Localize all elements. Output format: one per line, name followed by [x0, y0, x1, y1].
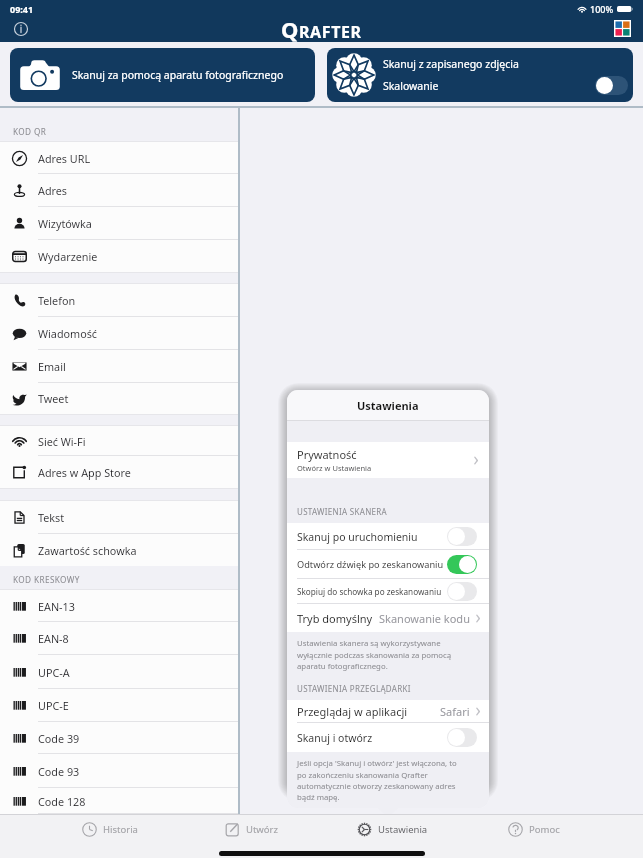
button[interactable]: Wydarzenie [0, 240, 238, 272]
staticText: EAN-13 [38, 599, 75, 614]
staticText: Ustawienia [357, 398, 419, 413]
staticText: Prywatność [297, 447, 357, 462]
button[interactable]: Skalowanie toggle [595, 76, 628, 95]
button[interactable]: Sieć Wi-Fi [0, 426, 238, 456]
button[interactable]: UPC-A [0, 655, 238, 689]
staticText: Code 128 [38, 794, 86, 809]
button[interactable]: EAN-13 [0, 590, 238, 622]
staticText: Tweet [38, 391, 69, 406]
staticText: RAFTER [299, 21, 362, 43]
staticText: USTAWIENIA PRZEGLĄDARKI [297, 683, 411, 694]
staticText: KOD QR [13, 126, 47, 137]
button[interactable]: Adres w App Store [0, 456, 238, 488]
button[interactable]: Skanuj i otwórz [287, 723, 489, 752]
button[interactable]: Code 128 [0, 788, 238, 814]
button[interactable]: Ustawienia [322, 815, 463, 844]
staticText: Tekst [38, 510, 65, 525]
staticText: Skanuj za pomocą aparatu fotograficznego [72, 68, 284, 82]
button[interactable]: Odtwórz dźwięk po zeskanowaniu [447, 555, 477, 574]
button[interactable]: Pomoc [463, 815, 604, 844]
button[interactable]: Telefon [0, 284, 238, 317]
staticText: Wydarzenie [38, 249, 98, 264]
staticText: Jeśli opcja 'Skanuj i otwórz' jest włącz… [297, 758, 457, 802]
staticText: Odtwórz dźwięk po zeskanowaniu [297, 558, 444, 571]
staticText: Code 93 [38, 764, 80, 779]
staticText: Adres [38, 183, 68, 198]
button[interactable]: Historia [39, 815, 181, 844]
staticText: Pomoc [529, 823, 560, 836]
button[interactable]: Skanuj i otwórz [447, 728, 477, 747]
staticText: Telefon [38, 293, 76, 308]
staticText: Ustawienia skanera są wykorzystywane wył… [297, 638, 452, 671]
staticText: Code 39 [38, 731, 80, 746]
button[interactable]: Skanuj z zapisanego zdjęcia [327, 48, 633, 102]
button[interactable]: Color palette [614, 20, 631, 37]
button[interactable]: Email [0, 350, 238, 383]
staticText: Skanuj i otwórz [297, 731, 373, 745]
button[interactable]: Code 39 [0, 722, 238, 754]
staticText: USTAWIENIA SKANERA [297, 506, 387, 517]
button[interactable]: UPC-E [0, 689, 238, 722]
button[interactable]: Tryb domyślny [287, 604, 489, 632]
staticText: Q [281, 14, 299, 44]
staticText: Sieć Wi-Fi [38, 434, 86, 449]
staticText: Skalowanie [383, 79, 439, 93]
button[interactable]: Adres URL [0, 142, 238, 174]
button[interactable]: Adres [0, 174, 238, 207]
staticText: Wiadomość [38, 326, 98, 341]
button[interactable]: Skanuj po uruchomieniu [287, 523, 489, 550]
button[interactable]: Zawartość schowka [0, 534, 238, 566]
staticText: UPC-A [38, 665, 70, 680]
button[interactable]: Info [9, 17, 32, 40]
button[interactable]: Skopiuj do schowka po zeskanowaniu [287, 579, 489, 604]
staticText: UPC-E [38, 698, 69, 713]
staticText: Tryb domyślny [297, 611, 373, 626]
staticText: Safari [440, 704, 470, 719]
staticText: Historia [103, 823, 138, 836]
staticText: KOD KRESKOWY [13, 574, 80, 585]
staticText: 09:41 [10, 3, 34, 15]
button[interactable]: Wiadomość [0, 317, 238, 350]
staticText: Adres URL [38, 151, 91, 166]
staticText: Wizytówka [38, 216, 92, 231]
staticText: Zawartość schowka [38, 543, 137, 558]
staticText: Skopiuj do schowka po zeskanowaniu [297, 586, 442, 597]
button[interactable]: Odtwórz dźwięk po zeskanowaniu [287, 550, 489, 579]
staticText: Otwórz w Ustawienia [297, 463, 372, 473]
staticText: Skanuj po uruchomieniu [297, 530, 418, 544]
button[interactable]: Skanuj za pomocą aparatu fotograficznego [10, 48, 315, 102]
button[interactable]: Wizytówka [0, 207, 238, 240]
staticText: Ustawienia [378, 823, 428, 836]
button[interactable]: Code 93 [0, 754, 238, 788]
button[interactable]: Tweet [0, 383, 238, 414]
staticText: Adres w App Store [38, 465, 131, 480]
staticText: Skanowanie kodu [379, 611, 470, 626]
staticText: Email [38, 359, 66, 374]
staticText: EAN-8 [38, 631, 69, 646]
staticText: Skanuj z zapisanego zdjęcia [383, 57, 519, 71]
button[interactable]: Prywatność [287, 442, 489, 478]
staticText: Przeglądaj w aplikacji [297, 704, 408, 719]
button[interactable]: Przeglądaj w aplikacji [287, 700, 489, 723]
button[interactable]: Utwórz [181, 815, 322, 844]
staticText: 100% [590, 3, 614, 15]
button[interactable]: Skanuj po uruchomieniu [447, 527, 477, 546]
button[interactable]: Skopiuj do schowka po zeskanowaniu [447, 582, 477, 601]
button[interactable]: EAN-8 [0, 622, 238, 655]
staticText: Utwórz [246, 823, 278, 836]
button[interactable]: Tekst [0, 501, 238, 534]
